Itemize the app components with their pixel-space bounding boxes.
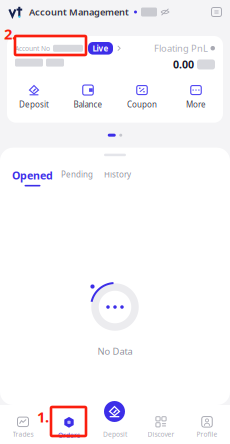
staticText: Live bbox=[92, 43, 108, 54]
button[interactable]: Pending bbox=[61, 168, 93, 180]
button[interactable]: Coupon bbox=[115, 85, 169, 110]
staticText: Balance bbox=[73, 99, 102, 110]
staticText: Deposit bbox=[19, 99, 49, 110]
staticText: Opened bbox=[12, 168, 53, 182]
button[interactable]: Deposit bbox=[7, 85, 61, 110]
staticText: Profile bbox=[196, 430, 217, 439]
button[interactable]: Account No bbox=[15, 42, 121, 55]
button[interactable]: Trades bbox=[0, 416, 46, 439]
button[interactable]: Hide balance bbox=[160, 7, 170, 17]
staticText: History bbox=[104, 169, 131, 180]
button[interactable]: Deposit bbox=[104, 401, 125, 422]
staticText: Deposit bbox=[103, 430, 127, 439]
staticText: Orders bbox=[58, 431, 80, 440]
button[interactable]: History bbox=[104, 168, 131, 180]
staticText: No Data bbox=[97, 345, 132, 357]
button[interactable]: Discover bbox=[138, 416, 184, 439]
staticText: 0.00 bbox=[173, 57, 194, 72]
staticText: Coupon bbox=[127, 99, 157, 110]
staticText: Trades bbox=[12, 430, 33, 439]
staticText: Discover bbox=[147, 430, 174, 439]
staticText: Account Management bbox=[29, 6, 129, 18]
button[interactable]: Profile bbox=[184, 416, 230, 439]
button[interactable]: Orders bbox=[46, 416, 92, 440]
staticText: 1. bbox=[37, 407, 49, 426]
staticText: 2. bbox=[4, 24, 16, 43]
button[interactable]: Messages bbox=[211, 6, 222, 17]
button[interactable]: More bbox=[169, 85, 223, 110]
staticText: More bbox=[186, 99, 206, 110]
button[interactable]: Deposit bbox=[92, 416, 138, 439]
staticText: Account No bbox=[15, 44, 50, 53]
staticText: Pending bbox=[61, 169, 93, 180]
staticText: Floating PnL bbox=[154, 42, 208, 54]
button[interactable]: Opened bbox=[12, 168, 53, 186]
button[interactable]: Balance bbox=[61, 85, 115, 110]
